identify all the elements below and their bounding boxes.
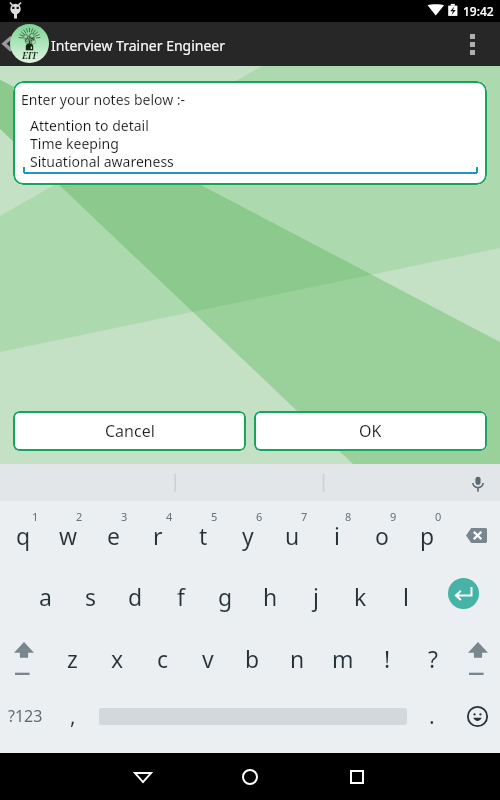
button[interactable]: c bbox=[140, 632, 185, 684]
staticText: a bbox=[39, 581, 52, 612]
button[interactable]: z bbox=[50, 632, 95, 684]
staticText: q bbox=[16, 520, 31, 551]
staticText: ? bbox=[428, 643, 438, 674]
staticText: f bbox=[177, 581, 185, 612]
staticText: ?123 bbox=[8, 705, 43, 727]
button[interactable]: p bbox=[405, 509, 449, 561]
staticText: ! bbox=[384, 643, 391, 674]
button[interactable]: w bbox=[46, 509, 90, 561]
button[interactable]: More options bbox=[452, 24, 492, 64]
button[interactable]: o bbox=[360, 509, 404, 561]
button[interactable]: s bbox=[68, 570, 113, 622]
staticText: Interview Trainer Engineer bbox=[51, 36, 226, 55]
staticText: p bbox=[420, 520, 435, 551]
staticText: 8 bbox=[345, 509, 352, 524]
button[interactable]: Enter bbox=[448, 578, 479, 609]
staticText: 7 bbox=[301, 509, 308, 524]
button[interactable]: Backspace bbox=[452, 513, 499, 557]
staticText: u bbox=[285, 520, 300, 551]
staticText: l bbox=[403, 581, 409, 612]
staticText: 2 bbox=[76, 509, 83, 524]
staticText: 4 bbox=[166, 509, 173, 524]
staticText: n bbox=[290, 643, 305, 674]
button[interactable]: l bbox=[383, 570, 428, 622]
button[interactable]: e bbox=[91, 509, 135, 561]
staticText: 9 bbox=[390, 509, 397, 524]
staticText: y bbox=[242, 520, 254, 551]
staticText: 5 bbox=[211, 509, 218, 524]
button[interactable]: b bbox=[230, 632, 275, 684]
staticText: t bbox=[199, 520, 208, 551]
staticText: 3 bbox=[121, 509, 128, 524]
button[interactable]: q bbox=[1, 509, 45, 561]
button[interactable]: j bbox=[293, 570, 338, 622]
button[interactable]: Emoji bbox=[462, 694, 493, 738]
button[interactable]: Shift bbox=[2, 634, 48, 682]
button[interactable]: r bbox=[136, 509, 180, 561]
button[interactable]: , bbox=[56, 694, 90, 738]
button[interactable]: Voice input bbox=[459, 464, 496, 501]
staticText: x bbox=[111, 643, 124, 674]
staticText: g bbox=[218, 581, 233, 612]
button[interactable]: d bbox=[113, 570, 158, 622]
staticText: b bbox=[245, 643, 260, 674]
button[interactable]: Recent apps bbox=[337, 757, 377, 797]
staticText: k bbox=[354, 581, 367, 612]
button[interactable]: ! bbox=[365, 632, 410, 684]
staticText: 1 bbox=[32, 509, 39, 524]
staticText: s bbox=[85, 581, 97, 612]
staticText: m bbox=[332, 643, 354, 674]
button[interactable]: Shift bbox=[455, 634, 500, 682]
staticText: Cancel bbox=[105, 420, 155, 442]
button[interactable]: Home bbox=[230, 757, 270, 797]
staticText: OK bbox=[359, 420, 382, 442]
button[interactable]: f bbox=[158, 570, 203, 622]
staticText: c bbox=[157, 643, 169, 674]
button[interactable]: Back bbox=[123, 757, 163, 797]
button[interactable]: x bbox=[95, 632, 140, 684]
button[interactable]: y bbox=[226, 509, 270, 561]
staticText: i bbox=[334, 520, 340, 551]
staticText: o bbox=[375, 520, 389, 551]
button[interactable]: v bbox=[185, 632, 230, 684]
staticText: h bbox=[263, 581, 278, 612]
button[interactable]: n bbox=[275, 632, 320, 684]
staticText: v bbox=[202, 643, 214, 674]
staticText: e bbox=[107, 520, 120, 551]
button[interactable]: u bbox=[270, 509, 314, 561]
staticText: , bbox=[70, 702, 76, 731]
staticText: z bbox=[67, 643, 78, 674]
button[interactable]: m bbox=[320, 632, 365, 684]
button[interactable]: ? bbox=[410, 632, 455, 684]
staticText: Enter your notes below :- bbox=[21, 90, 186, 109]
staticText: Attention to detail Time keeping Situati… bbox=[30, 116, 174, 171]
button[interactable]: t bbox=[181, 509, 225, 561]
staticText: r bbox=[153, 520, 163, 551]
button[interactable]: ?123 bbox=[0, 694, 50, 738]
button[interactable]: OK bbox=[254, 411, 487, 451]
staticText: d bbox=[128, 581, 143, 612]
staticText: . bbox=[429, 702, 435, 731]
button[interactable]: i bbox=[315, 509, 359, 561]
button[interactable]: App logo bbox=[10, 24, 49, 63]
button[interactable]: . bbox=[415, 694, 449, 738]
button[interactable]: k bbox=[338, 570, 383, 622]
button[interactable]: Cancel bbox=[13, 411, 246, 451]
staticText: j bbox=[313, 581, 319, 612]
staticText: 0 bbox=[435, 509, 442, 524]
staticText: 6 bbox=[256, 509, 263, 524]
staticText: w bbox=[59, 520, 78, 551]
button[interactable]: h bbox=[248, 570, 293, 622]
staticText: 19:42 bbox=[463, 3, 494, 19]
staticText: EIT bbox=[22, 49, 38, 61]
button[interactable]: Navigate up bbox=[0, 26, 22, 62]
button[interactable]: a bbox=[23, 570, 68, 622]
button[interactable]: g bbox=[203, 570, 248, 622]
